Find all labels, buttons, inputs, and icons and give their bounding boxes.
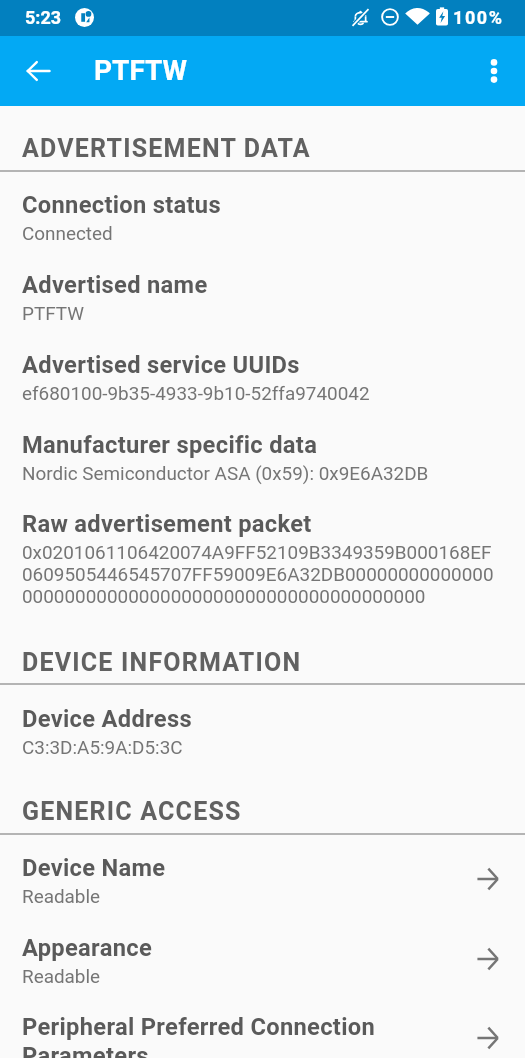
staticText: DEVICE INFORMATION <box>22 648 302 677</box>
staticText: Nordic Semiconductor ASA (0x59): 0x9E6A3… <box>22 462 429 484</box>
staticText: Device Address <box>22 705 192 733</box>
button[interactable]: Advertised name <box>0 271 525 351</box>
staticText: Connection status <box>22 191 221 219</box>
button[interactable]: Navigate up <box>14 47 62 95</box>
staticText: GENERIC ACCESS <box>22 797 242 826</box>
other: Open <box>466 937 509 980</box>
staticText: C3:3D:A5:9A:D5:3C <box>22 736 183 758</box>
staticText: Device Name <box>22 854 166 882</box>
button[interactable]: Device Address <box>0 705 525 785</box>
button[interactable]: Connection status <box>0 191 525 271</box>
button[interactable]: Appearance <box>0 934 525 1014</box>
staticText: PTFTW <box>94 54 188 87</box>
button[interactable]: Raw advertisement packet <box>0 510 525 634</box>
button[interactable]: More options <box>470 47 518 95</box>
staticText: Advertised name <box>22 271 208 299</box>
staticText: Advertised service UUIDs <box>22 351 300 379</box>
staticText: Connected <box>22 222 113 244</box>
staticText: Peripheral Preferred Connection Paramete… <box>22 1013 460 1058</box>
staticText: ADVERTISEMENT DATA <box>22 134 311 163</box>
button[interactable]: Manufacturer specific data <box>0 431 525 511</box>
button[interactable]: Advertised service UUIDs <box>0 351 525 431</box>
staticText: Raw advertisement packet <box>22 510 312 538</box>
staticText: ef680100-9b35-4933-9b10-52ffa9740042 <box>22 382 370 404</box>
staticText: Readable <box>22 965 101 987</box>
staticText: PTFTW <box>22 302 84 324</box>
button[interactable]: Peripheral Preferred Connection Paramete… <box>0 1013 525 1058</box>
button[interactable]: Device Name <box>0 854 525 934</box>
other: Open <box>466 1016 509 1058</box>
other: Open <box>466 857 509 900</box>
staticText: 0x0201061106420074A9FF52109B3349359B0001… <box>22 541 494 607</box>
staticText: 100% <box>453 7 504 28</box>
staticText: Appearance <box>22 934 153 962</box>
staticText: Manufacturer specific data <box>22 431 318 459</box>
staticText: 5:23 <box>25 7 62 28</box>
staticText: Readable <box>22 885 101 907</box>
